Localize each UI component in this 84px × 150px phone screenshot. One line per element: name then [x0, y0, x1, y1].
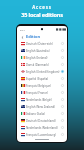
staticText: Français (France) [26, 91, 48, 95]
staticText: Edition [26, 34, 40, 39]
button[interactable]: Deutsch (Deutschland) [17, 117, 67, 124]
button[interactable]: English (United Kingdom) [17, 68, 67, 75]
button[interactable]: Back [20, 35, 24, 39]
staticText: Dansk (Danmark) [26, 63, 49, 67]
button[interactable]: Nederlands (Nederland) [17, 124, 67, 131]
staticText: English (United Kingdom) [26, 70, 60, 74]
staticText: Italiano (Italia) [26, 112, 45, 116]
button[interactable]: English (Ireland) [17, 54, 67, 61]
button[interactable]: Italiano (Italia) [17, 110, 67, 117]
button[interactable]: English (Australia) [17, 47, 67, 54]
staticText: Deutsch (Österreich) [26, 42, 53, 46]
button[interactable]: Dansk (Danmark) [17, 61, 67, 68]
staticText: Français (Luxembourg) [26, 133, 57, 137]
staticText: Access [32, 4, 52, 10]
button[interactable]: Français (Belgique) [17, 82, 67, 89]
staticText: Nederlands (België) [26, 98, 52, 102]
staticText: Nederlands (Nederland) [26, 126, 58, 130]
button[interactable]: Nederlands (België) [17, 96, 67, 103]
staticText: 35 local editions [21, 11, 63, 19]
staticText: English (New Zealand) [26, 105, 55, 109]
staticText: Français (Belgique) [26, 84, 51, 88]
staticText: English (Australia) [26, 49, 50, 53]
staticText: Español (España) [26, 77, 49, 81]
staticText: Deutsch (Deutschland) [26, 119, 56, 123]
staticText: English (Ireland) [26, 56, 48, 60]
button[interactable]: English (New Zealand) [17, 103, 67, 110]
button[interactable]: Deutsch (Österreich) [17, 40, 67, 47]
button[interactable]: Français (Luxembourg) [17, 131, 67, 138]
button[interactable]: Français (France) [17, 89, 67, 96]
button[interactable]: Español (España) [17, 75, 67, 82]
staticText: 9:41 [20, 28, 25, 31]
